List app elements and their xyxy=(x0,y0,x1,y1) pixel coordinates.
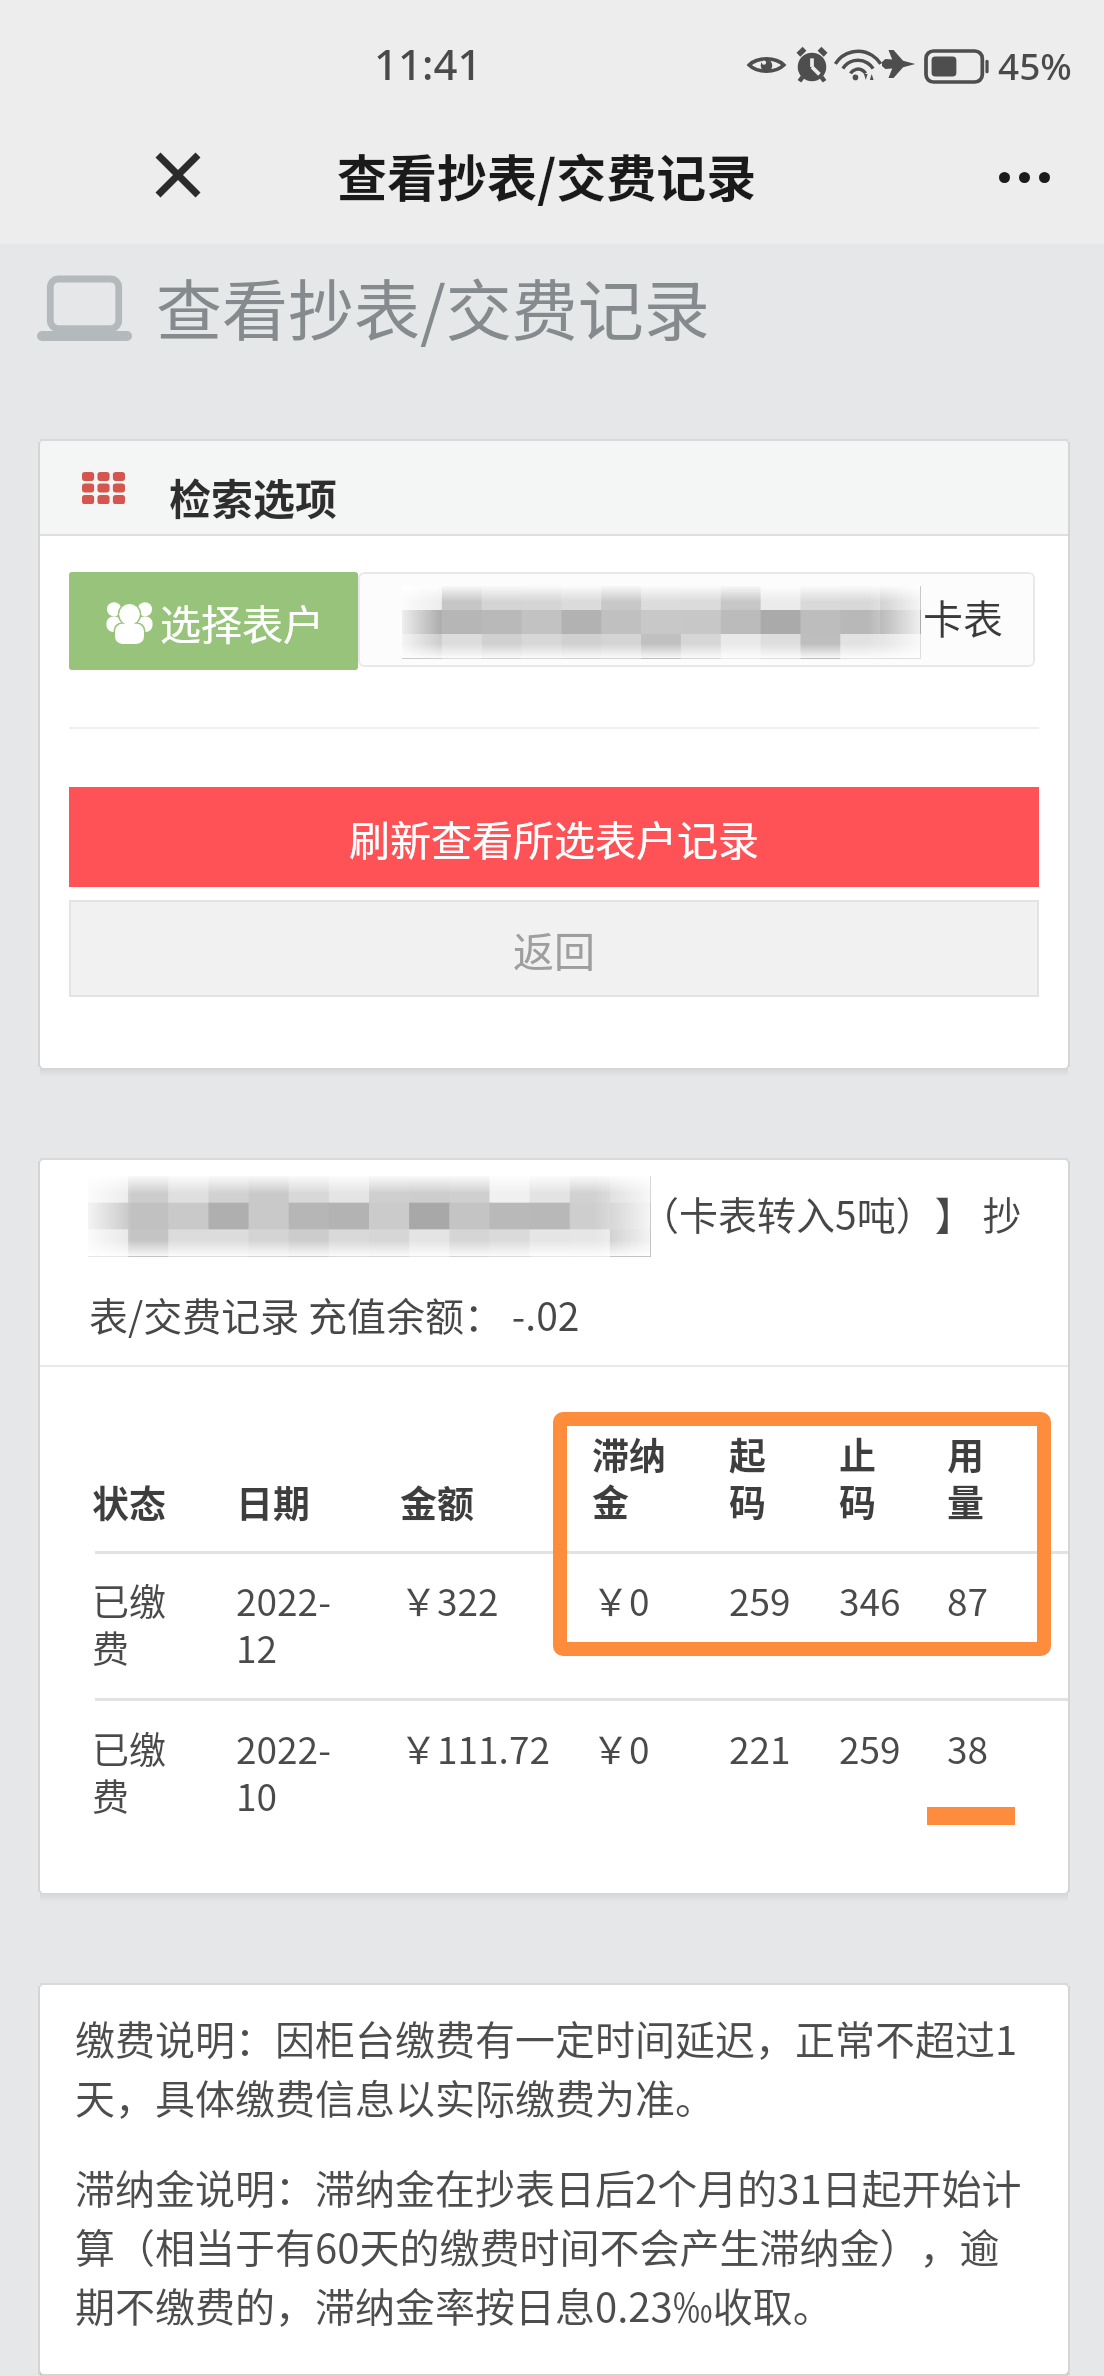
staticText: 346 xyxy=(839,1573,901,1627)
staticText: 已缴 费 xyxy=(92,1573,166,1674)
staticText: 检索选项 xyxy=(169,466,338,527)
staticText: 缴费说明：因柜台缴费有一定时间延迟，正常不超过1天，具体缴费信息以实际缴费为准。 xyxy=(75,2009,1032,2126)
button[interactable]: More options xyxy=(978,135,1070,219)
button[interactable]: 选择表户 xyxy=(69,572,358,670)
staticText: ￥0 xyxy=(592,1573,650,1627)
staticText: 卡表 xyxy=(923,588,1003,646)
staticText: 刷新查看所选表户记录 xyxy=(349,808,759,867)
staticText: 已缴 费 xyxy=(92,1721,166,1822)
staticText: （卡表转入5吨）】 抄 xyxy=(640,1185,1022,1241)
staticText: 查看抄表/交费记录 xyxy=(156,258,710,354)
staticText: 起 码 xyxy=(729,1427,766,1528)
staticText: ￥0 xyxy=(592,1721,650,1775)
staticText: 日期 xyxy=(236,1475,310,1529)
staticText: 2022- 10 xyxy=(236,1721,331,1822)
staticText: 45% xyxy=(998,40,1072,90)
staticText: 259 xyxy=(839,1721,901,1775)
staticText: 2022- 12 xyxy=(236,1573,331,1674)
staticText: 221 xyxy=(729,1721,791,1775)
staticText: 止 码 xyxy=(839,1427,876,1528)
staticText: 11:41 xyxy=(374,35,482,92)
staticText: 返回 xyxy=(513,919,595,978)
staticText: ￥111.72 xyxy=(400,1721,550,1775)
staticText: 87 xyxy=(947,1573,989,1627)
button[interactable]: 返回 xyxy=(69,900,1039,997)
staticText: 选择表户 xyxy=(160,592,324,651)
staticText: 38 xyxy=(947,1721,989,1775)
staticText: ￥322 xyxy=(400,1573,499,1627)
staticText: 金额 xyxy=(400,1475,474,1529)
staticText: 滞纳金说明：滞纳金在抄表日后2个月的31日起开始计算（相当于有60天的缴费时间不… xyxy=(75,2158,1032,2334)
staticText: 表/交费记录 充值余额： -.02 xyxy=(89,1286,580,1342)
staticText: 259 xyxy=(729,1573,791,1627)
button[interactable]: Close xyxy=(136,133,220,217)
button[interactable]: Selected meter account xyxy=(358,572,1035,667)
staticText: 查看抄表/交费记录 xyxy=(337,139,757,211)
staticText: 滞纳 金 xyxy=(592,1427,666,1528)
staticText: 用 量 xyxy=(947,1427,984,1528)
button[interactable]: 刷新查看所选表户记录 xyxy=(69,787,1039,887)
staticText: 状态 xyxy=(92,1475,166,1529)
